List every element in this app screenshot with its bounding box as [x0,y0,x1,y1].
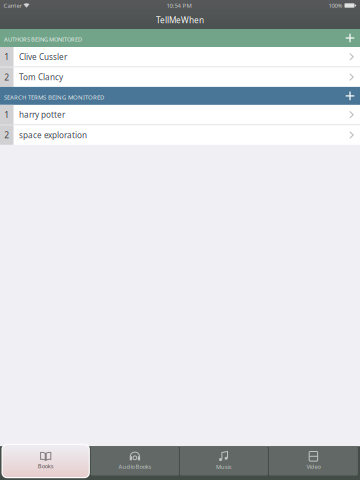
button[interactable]: 2 [0,125,360,145]
button[interactable]: 2 [0,67,360,87]
button[interactable]: Add [343,29,360,47]
button[interactable]: Add [343,87,360,105]
button[interactable]: 1 [0,47,360,67]
staticText: Clive Cussler [19,51,67,62]
staticText: 2 [4,129,9,141]
button[interactable]: Music [180,446,268,475]
staticText: Audio Books [118,463,151,470]
staticText: AUTHORS BEING MONITORED [4,35,82,43]
staticText: Carrier [3,1,21,9]
staticText: TellMeWhen [156,14,204,26]
button[interactable]: Video [269,446,358,475]
staticText: 100% [328,1,342,9]
staticText: Video [306,463,320,470]
button[interactable]: Books [1,444,90,478]
button[interactable]: 1 [0,105,360,124]
staticText: harry potter [19,109,65,120]
staticText: 2 [4,71,9,83]
staticText: 1 [4,51,9,63]
staticText: Tom Clancy [19,72,63,83]
staticText: Music [216,463,232,471]
staticText: Books [38,462,54,470]
staticText: space exploration [19,129,87,141]
button[interactable]: Audio Books [91,446,179,475]
staticText: 1 [4,109,9,120]
staticText: 10:54 PM [166,1,191,9]
staticText: SEARCH TERMS BEING MONITORED [4,93,104,101]
